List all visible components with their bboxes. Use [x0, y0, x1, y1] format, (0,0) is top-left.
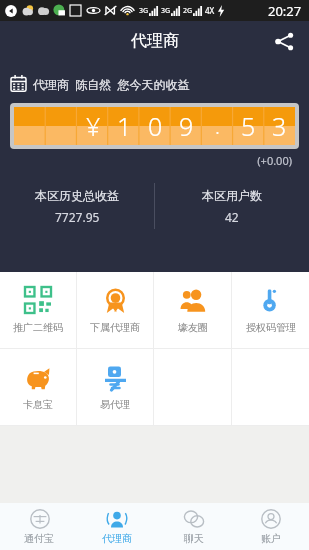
button[interactable]: 下属代理商	[77, 272, 153, 348]
staticText: ¥	[86, 109, 101, 143]
button[interactable]: 推广二维码	[0, 272, 76, 348]
staticText: 聊天	[184, 532, 204, 545]
button[interactable]: 壕友圈	[154, 272, 231, 348]
staticText: 授权码管理	[246, 321, 296, 334]
staticText: 3	[272, 109, 287, 143]
staticText: 下属代理商	[90, 321, 140, 334]
button[interactable]: 易代理	[77, 349, 153, 425]
staticText: .	[215, 113, 220, 140]
button[interactable]: 分享	[267, 24, 301, 58]
staticText: 9	[179, 109, 194, 143]
staticText: 3G	[139, 6, 149, 16]
staticText: 7727.95	[55, 209, 100, 225]
button[interactable]: 账户	[232, 503, 309, 550]
staticText: 20:27	[268, 2, 302, 20]
staticText: 0	[148, 109, 163, 143]
staticText: 5	[241, 109, 256, 143]
button[interactable]: 通付宝	[0, 503, 78, 550]
staticText: 代理商 陈自然 您今天的收益	[33, 76, 190, 92]
button[interactable]: 卡息宝	[0, 349, 76, 425]
staticText: 本区历史总收益	[35, 188, 119, 203]
button[interactable]: 授权码管理	[232, 272, 309, 348]
staticText: 推广二维码	[13, 321, 63, 334]
staticText: 壕友圈	[178, 321, 208, 334]
staticText: 易代理	[100, 398, 130, 411]
staticText: 通付宝	[24, 532, 54, 545]
staticText: (+0.00)	[0, 153, 292, 168]
staticText: 1	[117, 109, 132, 143]
button[interactable]: 聊天	[155, 503, 232, 550]
staticText: 2G	[183, 6, 193, 16]
staticText: 3G	[161, 6, 171, 16]
staticText: 代理商	[102, 532, 132, 545]
staticText: 代理商	[131, 31, 179, 51]
staticText: 42	[225, 209, 239, 225]
staticText: 账户	[261, 532, 281, 545]
button[interactable]: 代理商	[78, 503, 155, 550]
staticText: 卡息宝	[23, 398, 53, 411]
staticText: 4X	[205, 5, 215, 16]
staticText: 本区用户数	[202, 188, 262, 203]
